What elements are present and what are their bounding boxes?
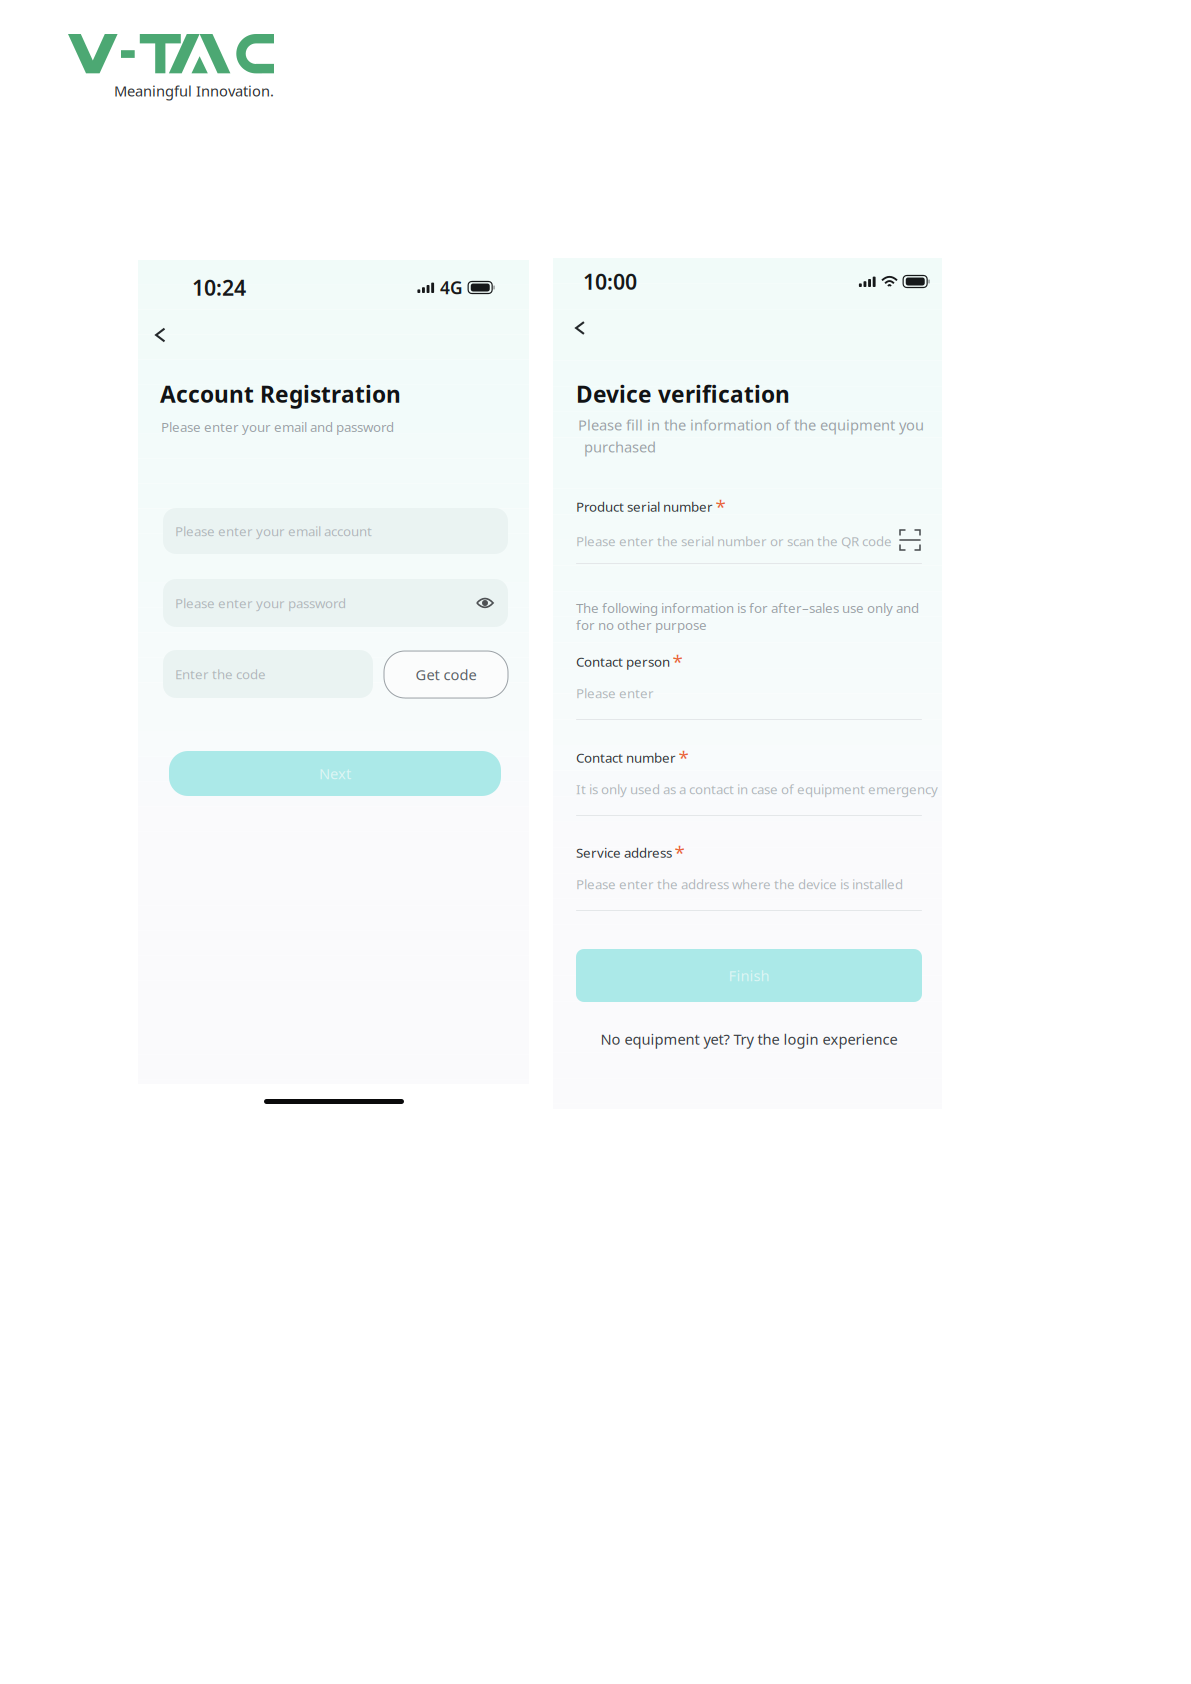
button[interactable]: Enter the code xyxy=(163,650,373,698)
button[interactable]: Please enter xyxy=(576,682,942,704)
staticText: Please enter xyxy=(576,684,654,702)
staticText: purchased xyxy=(584,437,656,456)
button[interactable]: Please enter the serial number or scan t… xyxy=(576,530,942,552)
button[interactable]: Please enter your password xyxy=(163,579,508,627)
button[interactable]: No equipment yet? Try the login experien… xyxy=(576,1026,922,1052)
staticText: * xyxy=(672,649,682,674)
staticText: Service address xyxy=(576,844,672,861)
staticText: * xyxy=(674,840,684,865)
staticText: * xyxy=(715,494,725,519)
staticText: Finish xyxy=(728,966,769,985)
staticText: Please enter your email account xyxy=(175,522,372,540)
button[interactable]: Get code xyxy=(384,651,508,698)
staticText: 10:24 xyxy=(192,273,246,302)
staticText: 4G xyxy=(440,276,463,299)
staticText: Contact number xyxy=(576,749,676,766)
button[interactable]: Please enter your email account xyxy=(163,508,508,554)
staticText: * xyxy=(678,745,688,770)
button[interactable]: Back xyxy=(155,320,185,350)
button[interactable]: Scan QR code xyxy=(899,529,921,551)
staticText: Device verification xyxy=(576,379,790,409)
staticText: Contact person xyxy=(576,653,670,670)
button[interactable]: Next xyxy=(169,751,501,796)
staticText: for no other purpose xyxy=(576,616,707,634)
staticText: Meaningful Innovation. xyxy=(114,81,274,100)
staticText: It is only used as a contact in case of … xyxy=(576,780,938,798)
staticText: Please fill in the information of the eq… xyxy=(578,415,924,434)
button[interactable]: Please enter the address where the devic… xyxy=(576,873,942,895)
staticText: Please enter the serial number or scan t… xyxy=(576,532,892,550)
button[interactable]: Show password xyxy=(476,596,494,610)
button[interactable]: It is only used as a contact in case of … xyxy=(576,778,942,800)
staticText: Enter the code xyxy=(175,665,266,683)
staticText: Account Registration xyxy=(160,379,401,409)
staticText: Product serial number xyxy=(576,498,713,515)
staticText: Get code xyxy=(415,665,476,684)
staticText: Please enter your email and password xyxy=(161,418,394,436)
staticText: Please enter the address where the devic… xyxy=(576,875,903,893)
staticText: 10:00 xyxy=(583,267,637,296)
staticText: Next xyxy=(319,764,351,783)
staticText: The following information is for after–s… xyxy=(576,599,919,617)
staticText: No equipment yet? Try the login experien… xyxy=(600,1029,897,1049)
button[interactable]: Finish xyxy=(576,949,922,1002)
staticText: Please enter your password xyxy=(175,594,346,612)
button[interactable]: Back xyxy=(575,314,603,342)
